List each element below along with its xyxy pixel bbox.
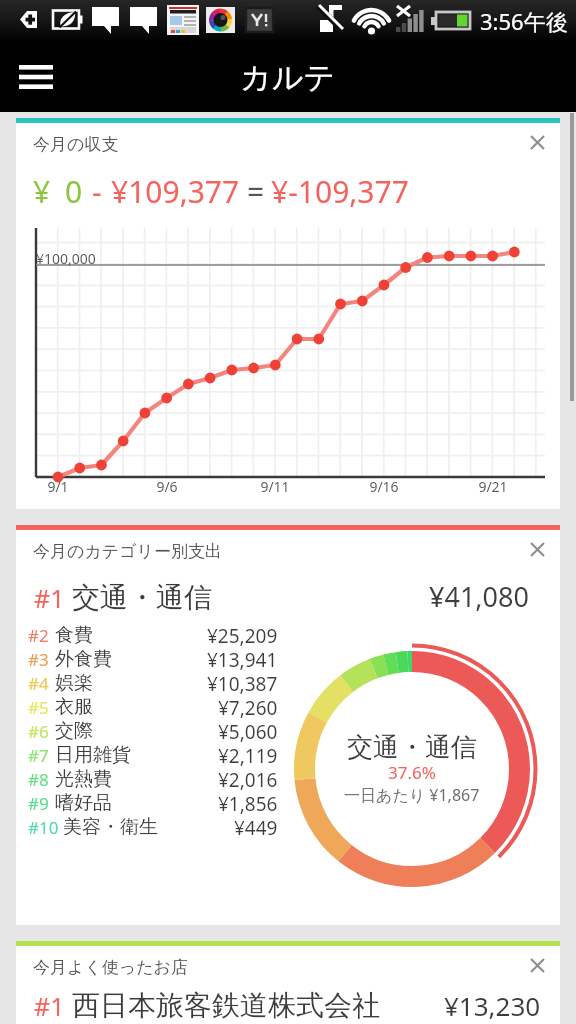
staticText: #8 [28,768,55,791]
staticText: 3:56午後 [480,6,568,36]
staticText: 光熱費 [55,767,112,791]
staticText: ¥ [33,171,51,212]
staticText: 今月の収支 [33,134,119,155]
staticText: #2 [28,624,55,647]
staticText: 9/1 [33,477,83,496]
staticText: #3 [28,648,55,671]
staticText: 食費 [55,623,93,647]
staticText: ¥13,941 [207,647,278,671]
staticText: 9/21 [468,477,518,496]
staticText: ¥13,230 [444,988,541,1023]
button[interactable]: #10 [28,815,278,839]
staticText: ¥25,209 [207,623,278,647]
button[interactable]: Close card [519,947,555,983]
staticText: #7 [28,744,55,767]
staticText: ¥10,387 [207,671,278,695]
staticText: ¥7,260 [218,695,278,719]
button[interactable]: #7 [28,743,278,767]
button[interactable]: #2 [28,623,278,647]
button[interactable]: #6 [28,719,278,743]
staticText: #9 [28,792,55,815]
staticText: ¥41,080 [429,578,529,615]
staticText: #6 [28,720,55,743]
staticText: 37.6% [388,761,436,784]
staticText: 娯楽 [55,671,93,695]
button[interactable]: #3 [28,647,278,671]
staticText: = [247,171,265,212]
staticText: 今月のカテゴリー別支出 [33,541,222,562]
button[interactable]: #4 [28,671,278,695]
button[interactable]: #9 [28,791,278,815]
staticText: 0 [65,171,83,212]
staticText: 9/16 [359,477,409,496]
staticText: 9/6 [142,477,192,496]
staticText: ¥109,377 [111,171,240,212]
staticText: 西日本旅客鉄道株式会社 [72,988,380,1023]
staticText: ¥2,016 [218,767,278,791]
staticText: #1 [34,581,65,615]
staticText: 嗜好品 [55,791,112,815]
staticText: #4 [28,672,55,695]
staticText: 外食費 [55,647,112,671]
staticText: 衣服 [55,695,93,719]
staticText: 交通・通信 [72,580,212,615]
staticText: 交際 [55,719,93,743]
staticText: ¥2,119 [218,743,278,767]
button[interactable]: Close card [519,124,555,160]
staticText: 日用雑貨 [55,743,131,767]
staticText: - [92,171,102,212]
button[interactable]: #8 [28,767,278,791]
staticText: 9/11 [250,477,300,496]
staticText: #10 [28,816,63,839]
staticText: ¥1,856 [218,791,278,815]
staticText: ¥5,060 [218,719,278,743]
staticText: カルテ [240,58,336,97]
button[interactable]: Close card [519,531,555,567]
staticText: 交通・通信 [347,731,477,764]
staticText: 一日あたり ¥1,867 [344,784,480,806]
button[interactable]: Open navigation drawer [12,53,60,101]
staticText: #1 [34,989,65,1023]
staticText: ¥449 [234,815,278,839]
staticText: #5 [28,696,55,719]
staticText: ¥-109,377 [271,171,409,212]
button[interactable]: #5 [28,695,278,719]
staticText: ¥100,000 [36,249,96,268]
staticText: 美容・衛生 [63,815,158,839]
staticText: 今月よく使ったお店 [33,957,188,978]
